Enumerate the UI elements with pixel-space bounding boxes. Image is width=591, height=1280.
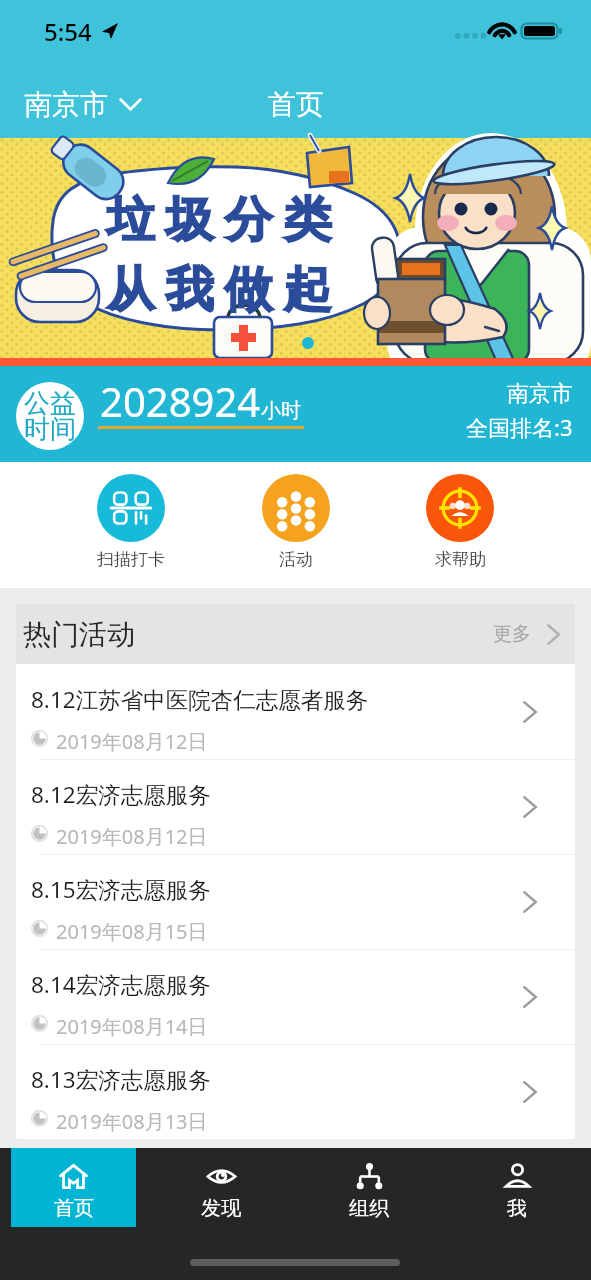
button[interactable]: Me (443, 1148, 591, 1227)
staticText: 我 (507, 1196, 527, 1221)
staticText: 南京市 (507, 380, 573, 408)
button[interactable]: 扫描打卡 (83, 474, 179, 570)
button[interactable]: 南京市 (18, 82, 148, 127)
button[interactable]: 活动 (248, 474, 344, 570)
staticText: 从我做起 (101, 260, 337, 320)
staticText: 8.14宏济志愿服务 (31, 969, 211, 1000)
staticText: 2019年08月12日 (56, 823, 208, 850)
staticText: 2019年08月15日 (56, 918, 208, 945)
staticText: 8.12江苏省中医院杏仁志愿者服务 (31, 684, 369, 715)
staticText: 垃圾分类 (101, 190, 337, 250)
staticText: 组织 (349, 1196, 389, 1221)
button[interactable]: 公益 时间 (0, 366, 591, 462)
staticText: 活动 (279, 549, 313, 570)
staticText: 2019年08月14日 (56, 1013, 208, 1040)
staticText: 全国排名:3 (466, 412, 573, 442)
button[interactable]: 8.15宏济志愿服务 (16, 854, 575, 949)
button[interactable]: 求帮助 (412, 474, 508, 570)
button[interactable]: 8.13宏济志愿服务 (16, 1044, 575, 1139)
staticText: 2028924 (100, 374, 261, 428)
staticText: 8.12宏济志愿服务 (31, 779, 211, 810)
button[interactable]: 8.14宏济志愿服务 (16, 949, 575, 1044)
staticText: 热门活动 (23, 617, 135, 652)
button[interactable]: Discover (147, 1148, 295, 1227)
staticText: 发现 (201, 1196, 241, 1221)
button[interactable]: Home (11, 1148, 136, 1227)
staticText: 首页 (268, 87, 324, 122)
staticText: 南京市 (24, 87, 108, 122)
button[interactable]: 垃圾分类 (0, 138, 591, 366)
staticText: 小时 (261, 398, 301, 423)
staticText: 扫描打卡 (97, 549, 165, 570)
button[interactable]: 8.12宏济志愿服务 (16, 759, 575, 854)
staticText: 更多 (493, 622, 531, 646)
staticText: 2019年08月12日 (56, 728, 208, 755)
button[interactable]: 更多 (479, 612, 575, 656)
staticText: 求帮助 (435, 549, 486, 570)
staticText: 8.13宏济志愿服务 (31, 1064, 211, 1095)
button[interactable]: Organisation (295, 1148, 443, 1227)
staticText: 首页 (54, 1196, 94, 1221)
staticText: 5:54 (44, 15, 92, 48)
staticText: 2019年08月13日 (56, 1108, 208, 1135)
staticText: 公益 时间 (24, 387, 76, 446)
button[interactable]: 8.12江苏省中医院杏仁志愿者服务 (16, 664, 575, 759)
staticText: 8.15宏济志愿服务 (31, 874, 211, 905)
